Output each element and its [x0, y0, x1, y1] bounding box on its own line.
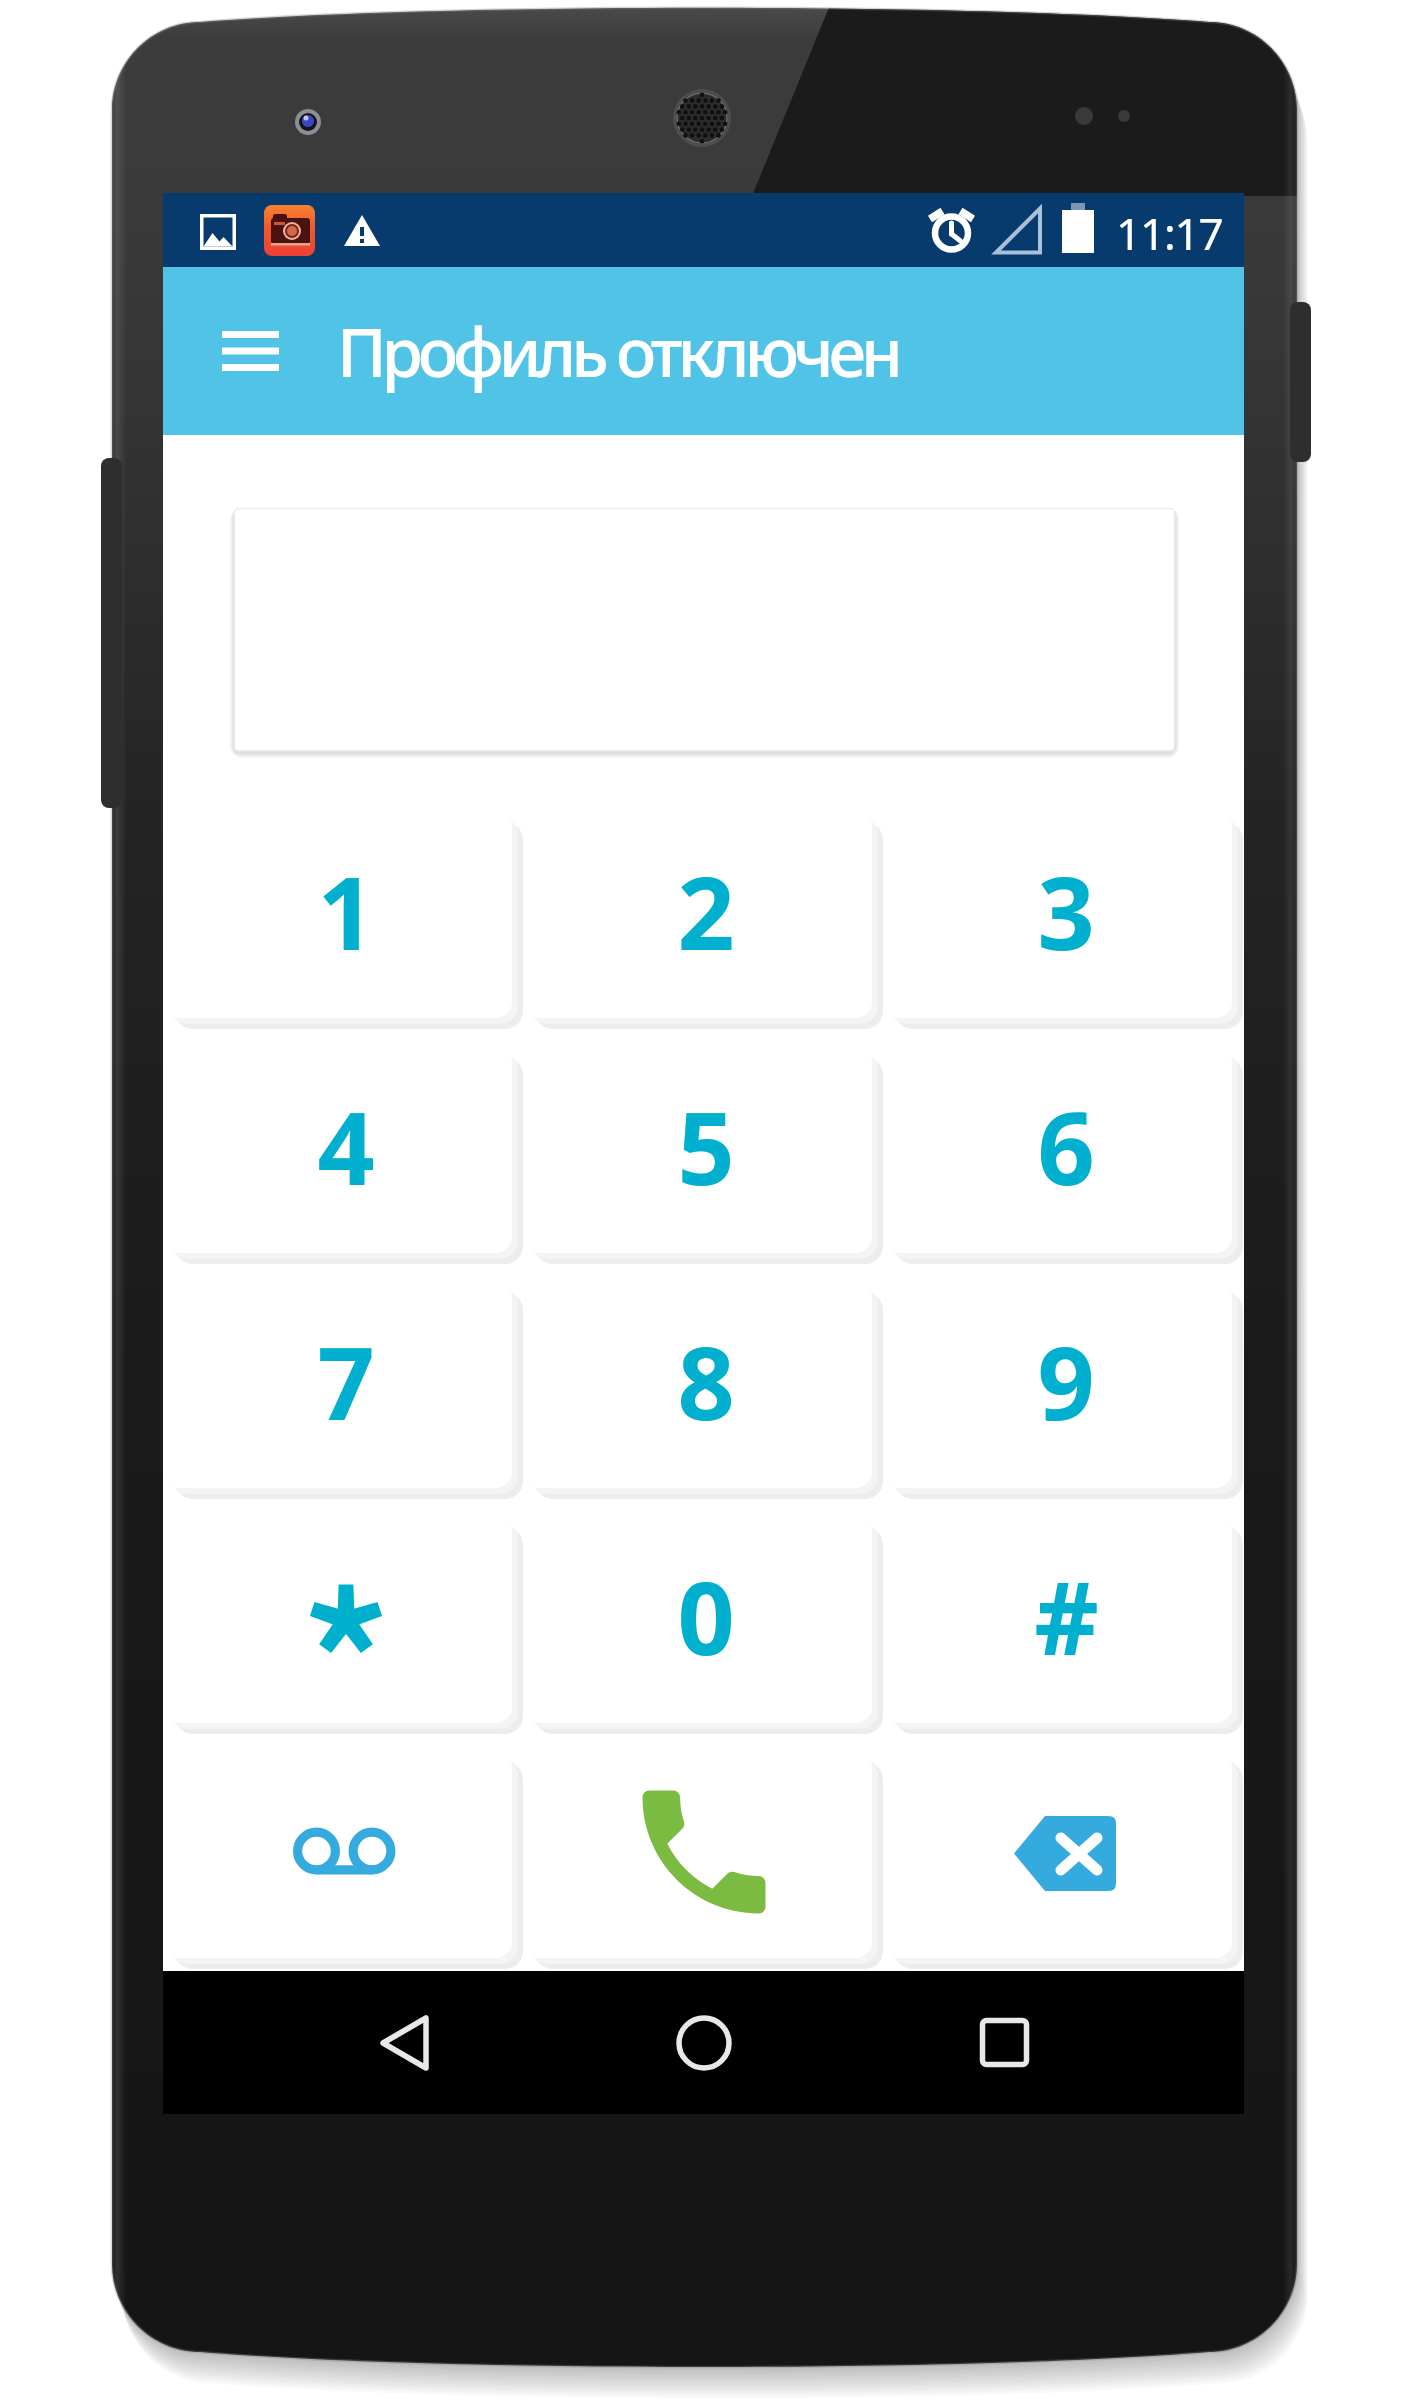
button[interactable]: [164, 1516, 512, 1723]
button[interactable]: 8: [524, 1281, 872, 1488]
button[interactable]: 7: [164, 1281, 512, 1488]
staticText: 3: [1037, 843, 1095, 979]
staticText: 5: [677, 1078, 735, 1214]
staticText: 1: [317, 843, 375, 979]
staticText: Профиль отключен: [337, 305, 898, 396]
button[interactable]: Voicemail: [164, 1751, 512, 1958]
button[interactable]: Call: [524, 1751, 872, 1958]
button[interactable]: Home: [614, 1971, 794, 2114]
staticText: 4: [317, 1078, 375, 1214]
staticText: #: [1034, 1548, 1099, 1684]
button[interactable]: Back: [314, 1971, 494, 2114]
staticText: 2: [677, 843, 735, 979]
button[interactable]: Delete: [884, 1751, 1232, 1958]
button[interactable]: 9: [884, 1281, 1232, 1488]
staticText: 9: [1037, 1313, 1095, 1449]
button[interactable]: Open navigation menu: [187, 297, 295, 405]
button[interactable]: 6: [884, 1046, 1232, 1253]
staticText: 0: [677, 1548, 735, 1684]
button[interactable]: 1: [164, 811, 512, 1018]
staticText: 6: [1037, 1078, 1095, 1214]
button[interactable]: 4: [164, 1046, 512, 1253]
button[interactable]: Recent apps: [914, 1971, 1094, 2114]
button[interactable]: 3: [884, 811, 1232, 1018]
button[interactable]: 0: [524, 1516, 872, 1723]
staticText: 11:17: [1116, 203, 1223, 263]
button[interactable]: 2: [524, 811, 872, 1018]
button[interactable]: 5: [524, 1046, 872, 1253]
staticText: 7: [317, 1313, 375, 1449]
button[interactable]: #: [884, 1516, 1232, 1723]
staticText: 8: [677, 1313, 735, 1449]
